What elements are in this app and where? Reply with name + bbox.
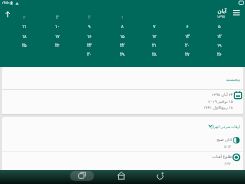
button[interactable]: ۱۲	[209, 31, 229, 40]
staticText: ۱۳	[177, 34, 197, 40]
button[interactable]: ۲۶	[209, 49, 229, 58]
staticText: ۲۴	[47, 43, 67, 49]
button[interactable]: ۲۹	[112, 49, 132, 58]
staticText: ۲۳	[79, 43, 99, 49]
button[interactable]: ۱۶	[79, 31, 99, 40]
button[interactable]	[116, 171, 127, 182]
button[interactable]: ۲	[79, 12, 99, 21]
button[interactable]: ۲۷	[177, 49, 197, 58]
button[interactable]: ۱۸	[14, 31, 34, 40]
staticText: ۹	[79, 24, 99, 30]
staticText: اوقات شرعی (تهران)	[209, 124, 240, 129]
button[interactable]: طلوع آفتاب	[2, 151, 243, 168]
staticText: ۲۲	[112, 43, 132, 49]
button[interactable]: ۲۳	[79, 40, 99, 49]
staticText: ۲۱	[144, 43, 164, 49]
staticText: ۷	[144, 24, 164, 30]
button[interactable]: ۱۷	[47, 31, 67, 40]
staticText: ۱۹	[209, 43, 229, 49]
button[interactable]: ۱۰	[47, 21, 67, 30]
button[interactable]	[77, 171, 88, 182]
staticText: ۱۴:۵۱	[1, 0, 10, 5]
button[interactable]: ۲۸	[144, 49, 164, 58]
button[interactable]	[3, 10, 13, 20]
staticText: ۱۲	[209, 34, 229, 40]
button[interactable]: ۵	[209, 21, 229, 30]
button[interactable]: ۱	[112, 12, 132, 21]
staticText: ۲۹	[112, 52, 132, 58]
staticText: ۱۵ نوامبر ۲۰۱۹	[142, 99, 233, 104]
staticText: ۸	[112, 24, 132, 30]
staticText: آبان	[215, 8, 229, 15]
staticText: ۱۶	[79, 34, 99, 40]
staticText: ۱۵	[112, 34, 132, 40]
staticText: ۲۵	[14, 43, 34, 49]
button[interactable]: ۴	[14, 12, 34, 21]
staticText: ۱۷	[47, 34, 67, 40]
button[interactable]	[231, 8, 242, 18]
button[interactable]: ۱۵	[112, 31, 132, 40]
button[interactable]: اوقات شرعی (تهران)	[2, 117, 243, 131]
staticText: ۱۰	[47, 24, 67, 30]
staticText: ۲۴ آبان ۱۳۹۸	[142, 92, 233, 97]
staticText: ۲۷	[177, 52, 197, 58]
button[interactable]: ۲۱	[144, 40, 164, 49]
button[interactable]: اذان صبح	[2, 134, 243, 151]
staticText: ۲۶	[209, 52, 229, 58]
staticText: ۲	[79, 15, 99, 21]
button[interactable]: ۱۱	[14, 21, 34, 30]
staticText: ۱۴	[144, 34, 164, 40]
button[interactable]: ۶	[177, 21, 197, 30]
button[interactable]: ۱۳	[177, 31, 197, 40]
staticText: ۶	[177, 24, 197, 30]
staticText: ۶:۴۲	[142, 161, 231, 166]
button[interactable]	[2, 90, 243, 114]
button[interactable]: ۱۹	[209, 40, 229, 49]
button[interactable]: ۸	[112, 21, 132, 30]
button[interactable]: ۲۵	[14, 40, 34, 49]
button[interactable]: ۱۴	[144, 31, 164, 40]
button[interactable]	[155, 171, 166, 182]
staticText: ۱۳۹۸	[215, 14, 227, 18]
staticText: ۲۰	[177, 43, 197, 49]
staticText: ۱۱	[14, 24, 34, 30]
staticText: ۵:۱۴	[142, 144, 231, 149]
staticText: طلوع آفتاب	[142, 154, 232, 160]
staticText: پنجشنبه	[226, 77, 240, 82]
button[interactable]: ۲۰	[177, 40, 197, 49]
button[interactable]: ۳	[47, 12, 67, 21]
staticText: ۲۸	[144, 52, 164, 58]
staticText: ۵	[209, 24, 229, 30]
button[interactable]: ۳۰	[79, 49, 99, 58]
button[interactable]: پنجشنبه	[2, 67, 243, 89]
staticText: ۴	[14, 15, 34, 21]
staticText: ۱	[112, 15, 132, 21]
staticText: اذان صبح	[142, 137, 232, 143]
staticText: ۳	[47, 15, 67, 21]
button[interactable]: ۲۴	[47, 40, 67, 49]
staticText: ۱۸	[14, 34, 34, 40]
button[interactable]: ۹	[79, 21, 99, 30]
staticText: ۱۸ ربیع‌الاول ۱۴۴۱	[142, 105, 233, 110]
button[interactable]: ۲۲	[112, 40, 132, 49]
staticText: ۳۰	[79, 52, 99, 58]
button[interactable]: ۷	[144, 21, 164, 30]
